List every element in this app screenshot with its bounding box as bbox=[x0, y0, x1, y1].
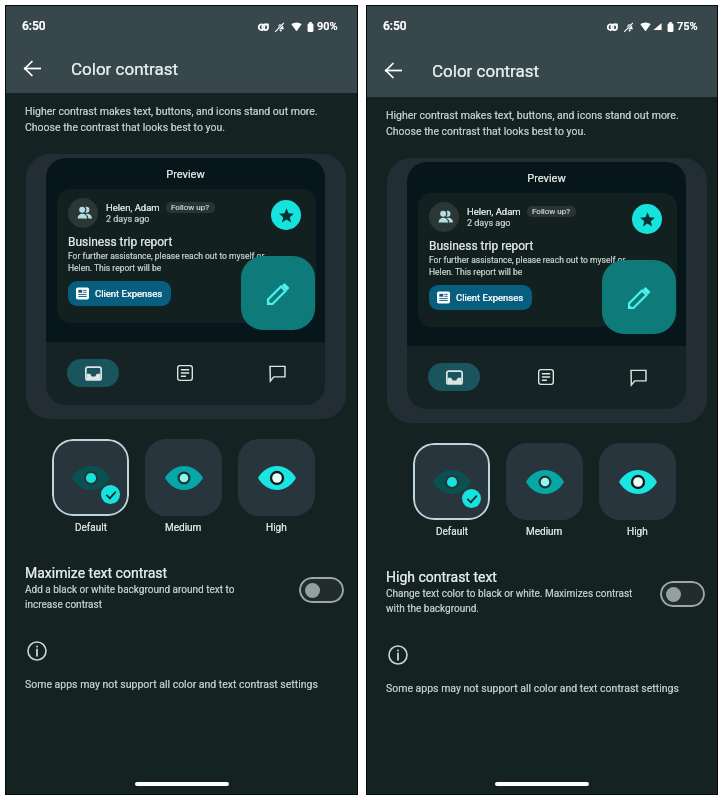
button[interactable] bbox=[145, 439, 222, 516]
staticText: Client Expenses bbox=[95, 288, 163, 299]
staticText: High contrast text bbox=[386, 569, 497, 585]
staticText: Default bbox=[436, 526, 468, 538]
staticText: Preview bbox=[407, 172, 686, 185]
button[interactable]: Client Expenses bbox=[68, 281, 171, 306]
button[interactable]: Chat bbox=[262, 358, 292, 388]
staticText: Helen, Adam bbox=[106, 202, 160, 213]
staticText: 90% bbox=[317, 20, 338, 33]
staticText: For further assistance, please reach out… bbox=[429, 255, 626, 277]
staticText: Default bbox=[75, 522, 107, 534]
staticText: Follow up? bbox=[532, 207, 571, 216]
button[interactable] bbox=[506, 443, 583, 520]
button[interactable] bbox=[238, 439, 315, 516]
staticText: Higher contrast makes text, buttons, and… bbox=[25, 105, 318, 133]
button[interactable]: Articles bbox=[531, 362, 561, 392]
staticText: 75% bbox=[677, 20, 698, 33]
button[interactable]: More information bbox=[25, 639, 49, 663]
button[interactable]: High contrast text bbox=[366, 569, 718, 625]
staticText: Color contrast bbox=[71, 59, 179, 79]
button[interactable]: Inbox bbox=[428, 363, 480, 391]
staticText: Helen, Adam bbox=[467, 206, 521, 217]
staticText: Some apps may not support all color and … bbox=[25, 678, 318, 690]
button[interactable]: Back bbox=[377, 54, 409, 86]
button[interactable] bbox=[413, 443, 490, 520]
button[interactable]: More information bbox=[386, 643, 410, 667]
button[interactable]: Star bbox=[271, 200, 301, 230]
staticText: Change text color to black or white. Max… bbox=[386, 588, 633, 614]
button[interactable] bbox=[599, 443, 676, 520]
button[interactable]: Star bbox=[632, 204, 662, 234]
staticText: Client Expenses bbox=[456, 292, 524, 303]
staticText: Business trip report bbox=[429, 239, 534, 253]
button[interactable]: Maximize text contrast bbox=[5, 565, 358, 621]
button[interactable] bbox=[52, 439, 129, 516]
staticText: 2 days ago bbox=[467, 218, 511, 229]
staticText: Follow up? bbox=[171, 203, 210, 212]
button[interactable]: Compose bbox=[241, 256, 315, 330]
staticText: 2 days ago bbox=[106, 214, 150, 225]
button[interactable]: Compose bbox=[602, 260, 676, 334]
staticText: 6:50 bbox=[383, 19, 407, 33]
staticText: Maximize text contrast bbox=[25, 565, 168, 581]
staticText: High bbox=[266, 522, 287, 534]
staticText: Business trip report bbox=[68, 235, 173, 249]
staticText: For further assistance, please reach out… bbox=[68, 251, 265, 273]
staticText: Color contrast bbox=[432, 61, 540, 81]
staticText: Add a black or white background around t… bbox=[25, 584, 235, 610]
staticText: Medium bbox=[165, 522, 202, 534]
button[interactable]: Chat bbox=[623, 362, 653, 392]
staticText: Higher contrast makes text, buttons, and… bbox=[386, 109, 679, 137]
button[interactable]: Inbox bbox=[67, 359, 119, 387]
button[interactable]: Client Expenses bbox=[429, 285, 532, 310]
button[interactable]: Articles bbox=[170, 358, 200, 388]
staticText: Medium bbox=[526, 526, 563, 538]
staticText: Preview bbox=[46, 168, 325, 181]
staticText: Some apps may not support all color and … bbox=[386, 682, 679, 694]
staticText: High bbox=[627, 526, 648, 538]
button[interactable]: Back bbox=[16, 52, 48, 84]
staticText: 6:50 bbox=[22, 19, 46, 33]
